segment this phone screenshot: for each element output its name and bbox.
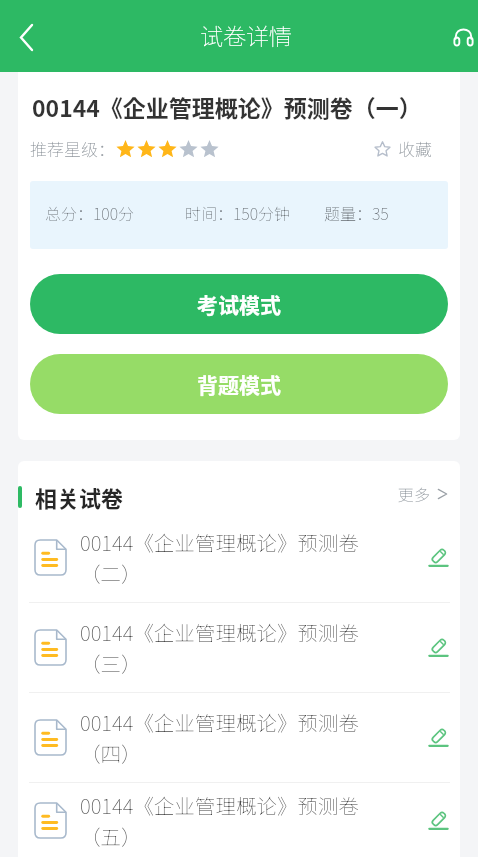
button[interactable]: Back — [0, 10, 52, 62]
button[interactable]: 00144《企业管理概论》预测卷 （三） — [18, 603, 460, 692]
staticText: 00144《企业管理概论》预测卷 （二） — [80, 527, 429, 588]
staticText: 相关试卷 — [35, 481, 124, 513]
other: Edit — [429, 638, 448, 657]
other: Edit — [429, 811, 448, 830]
button[interactable]: Audio — [441, 14, 478, 58]
button[interactable]: 00144《企业管理概论》预测卷 （二） — [18, 513, 460, 602]
staticText: 时间：150分钟 — [185, 201, 291, 224]
staticText: 试卷详情 — [200, 18, 292, 51]
other: Edit — [429, 728, 448, 747]
staticText: 背题模式 — [197, 369, 281, 399]
staticText: 题量：35 — [324, 201, 389, 224]
button[interactable]: 00144《企业管理概论》预测卷 （四） — [18, 693, 460, 782]
staticText: 00144《企业管理概论》预测卷 （三） — [80, 617, 429, 678]
staticText: 00144《企业管理概论》预测卷 （五） — [80, 790, 429, 851]
button[interactable]: 00144《企业管理概论》预测卷 （五） — [18, 783, 460, 857]
staticText: 总分：100分 — [45, 201, 135, 224]
button[interactable]: 收藏 — [374, 136, 432, 161]
other: Edit — [429, 548, 448, 567]
staticText: 00144《企业管理概论》预测卷 （四） — [80, 707, 429, 768]
staticText: 推荐星级： — [30, 136, 115, 161]
button[interactable]: 更多 — [398, 485, 460, 508]
staticText: 00144《企业管理概论》预测卷（一） — [32, 90, 422, 123]
staticText: 考试模式 — [197, 289, 281, 319]
button[interactable]: 背题模式 — [30, 354, 448, 414]
button[interactable]: 考试模式 — [30, 274, 448, 334]
staticText: 更多 — [398, 482, 431, 505]
staticText: 收藏 — [398, 136, 432, 161]
